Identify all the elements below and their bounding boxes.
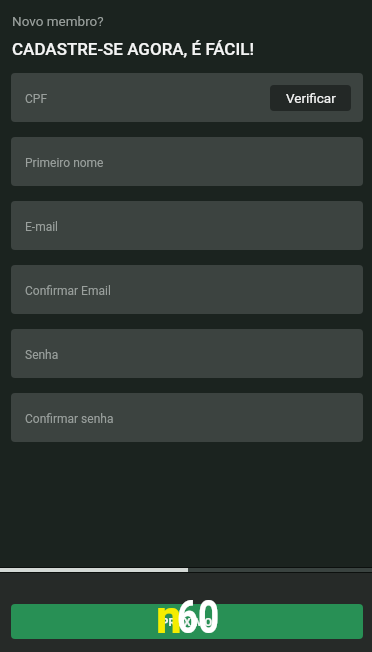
button[interactable]: Senha <box>11 329 363 378</box>
staticText: 60 <box>177 590 219 644</box>
staticText: Verificar <box>286 90 336 106</box>
staticText: n <box>156 590 182 644</box>
staticText: PRÓXIMO <box>161 615 213 628</box>
staticText: CPF <box>25 92 48 106</box>
staticText: Confirmar senha <box>25 412 114 426</box>
button[interactable]: CPF <box>11 73 363 122</box>
staticText: CADASTRE-SE AGORA, É FÁCIL! <box>12 39 254 59</box>
button[interactable]: Verificar <box>270 85 351 111</box>
staticText: Senha <box>25 348 59 362</box>
button[interactable]: Confirmar Email <box>11 265 363 314</box>
button[interactable]: E-mail <box>11 201 363 250</box>
button[interactable]: PRÓXIMO <box>11 604 363 639</box>
staticText: Novo membro? <box>12 13 104 29</box>
button[interactable]: Primeiro nome <box>11 137 363 186</box>
button[interactable]: Confirmar senha <box>11 393 363 442</box>
staticText: Primeiro nome <box>25 156 104 170</box>
staticText: E-mail <box>25 220 59 234</box>
staticText: Confirmar Email <box>25 284 111 298</box>
